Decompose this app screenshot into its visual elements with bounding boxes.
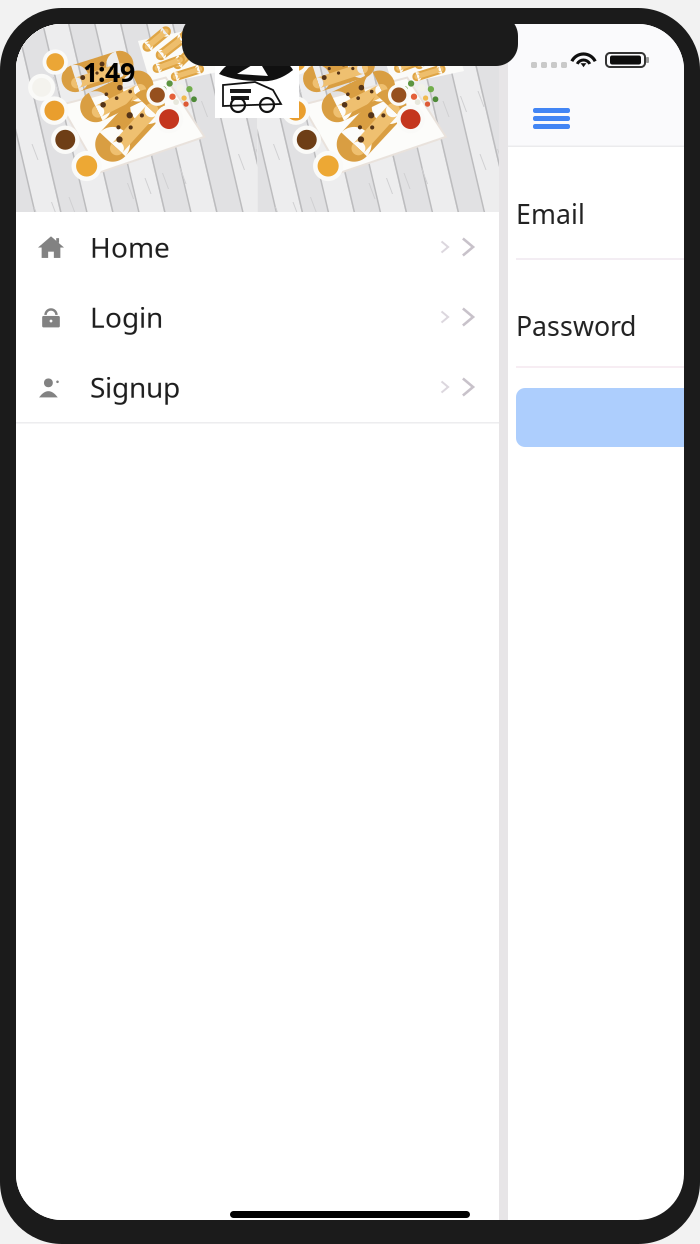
button[interactable]: Home bbox=[16, 212, 499, 282]
staticText: Email bbox=[516, 196, 585, 231]
staticText: 1:49 bbox=[83, 54, 135, 89]
button[interactable]: Signup bbox=[16, 352, 499, 422]
staticText: Home bbox=[90, 228, 170, 266]
staticText: Signup bbox=[90, 368, 180, 406]
button[interactable]: Email bbox=[516, 190, 700, 260]
staticText: Password bbox=[516, 308, 636, 343]
button[interactable] bbox=[516, 388, 700, 447]
button[interactable]: Password bbox=[516, 298, 700, 368]
button[interactable]: Open menu bbox=[517, 94, 586, 150]
button[interactable]: Login bbox=[16, 282, 499, 352]
staticText: Login bbox=[90, 298, 163, 336]
